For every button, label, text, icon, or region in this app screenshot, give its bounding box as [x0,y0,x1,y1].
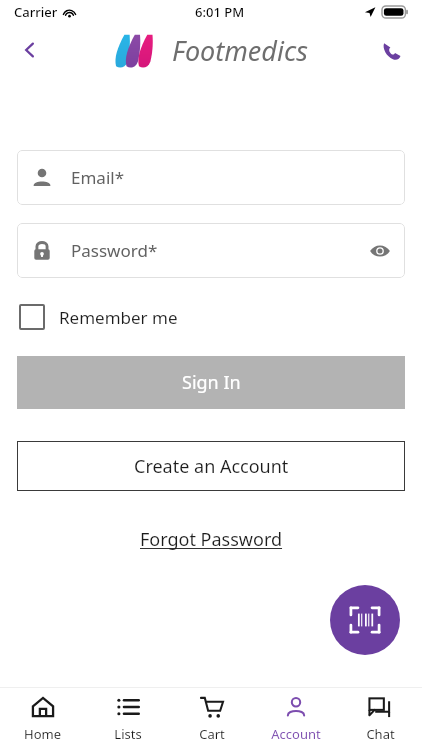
button[interactable]: Remember me [17,300,180,334]
staticText: Password* [71,239,158,262]
button[interactable]: Lists [85,688,170,750]
staticText: Footmedics [172,32,308,69]
button[interactable]: Forgot Password [134,521,289,558]
staticText: Account [271,725,321,743]
staticText: Create an Account [134,454,289,479]
button[interactable]: Email* [17,150,405,205]
staticText: Sign In [182,370,241,395]
staticText: Cart [199,725,225,743]
staticText: Home [24,725,61,743]
button[interactable]: Sign In [17,356,405,409]
staticText: Carrier [14,3,58,21]
staticText: Forgot Password [140,527,283,552]
button[interactable]: Account [254,688,338,750]
button[interactable]: Create an Account [17,441,405,491]
staticText: 6:01 PM [195,3,245,21]
staticText: Email* [71,166,125,189]
button[interactable]: Call [372,30,412,70]
staticText: Chat [366,725,395,743]
button[interactable]: Back [10,30,50,70]
button[interactable]: Home [0,688,85,750]
button[interactable]: Cart [170,688,254,750]
staticText: Lists [114,725,142,743]
button[interactable]: Password* [17,223,405,278]
button[interactable]: Scan barcode [330,585,400,655]
button[interactable]: Chat [338,688,422,750]
staticText: Remember me [59,306,178,329]
